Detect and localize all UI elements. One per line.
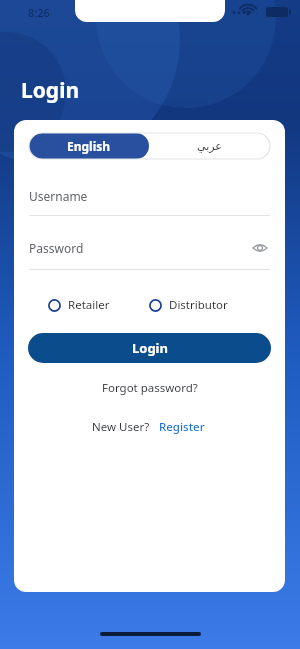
staticText: English bbox=[67, 138, 111, 154]
staticText: New User? bbox=[92, 419, 150, 435]
staticText: Login bbox=[21, 76, 80, 105]
button[interactable]: Login bbox=[28, 333, 271, 363]
button[interactable]: Forgot password? bbox=[14, 377, 285, 399]
staticText: Register bbox=[159, 419, 205, 435]
button[interactable]: English bbox=[29, 133, 149, 159]
staticText: Retailer bbox=[68, 297, 110, 313]
staticText: عربي bbox=[197, 140, 222, 153]
staticText: Username bbox=[29, 188, 270, 204]
staticText: Distributor bbox=[169, 297, 228, 313]
button[interactable]: Retailer bbox=[48, 294, 149, 316]
staticText: Login bbox=[132, 339, 168, 357]
button[interactable]: Register bbox=[157, 417, 207, 437]
button[interactable]: Password bbox=[29, 238, 270, 270]
staticText: Forgot password? bbox=[102, 380, 198, 396]
staticText: Password bbox=[29, 240, 250, 256]
button[interactable]: Distributor bbox=[149, 294, 251, 316]
button[interactable]: Username bbox=[29, 188, 270, 216]
button[interactable]: عربي bbox=[149, 133, 270, 159]
staticText: 8:26 bbox=[28, 5, 50, 20]
button[interactable]: Show password bbox=[250, 238, 270, 258]
